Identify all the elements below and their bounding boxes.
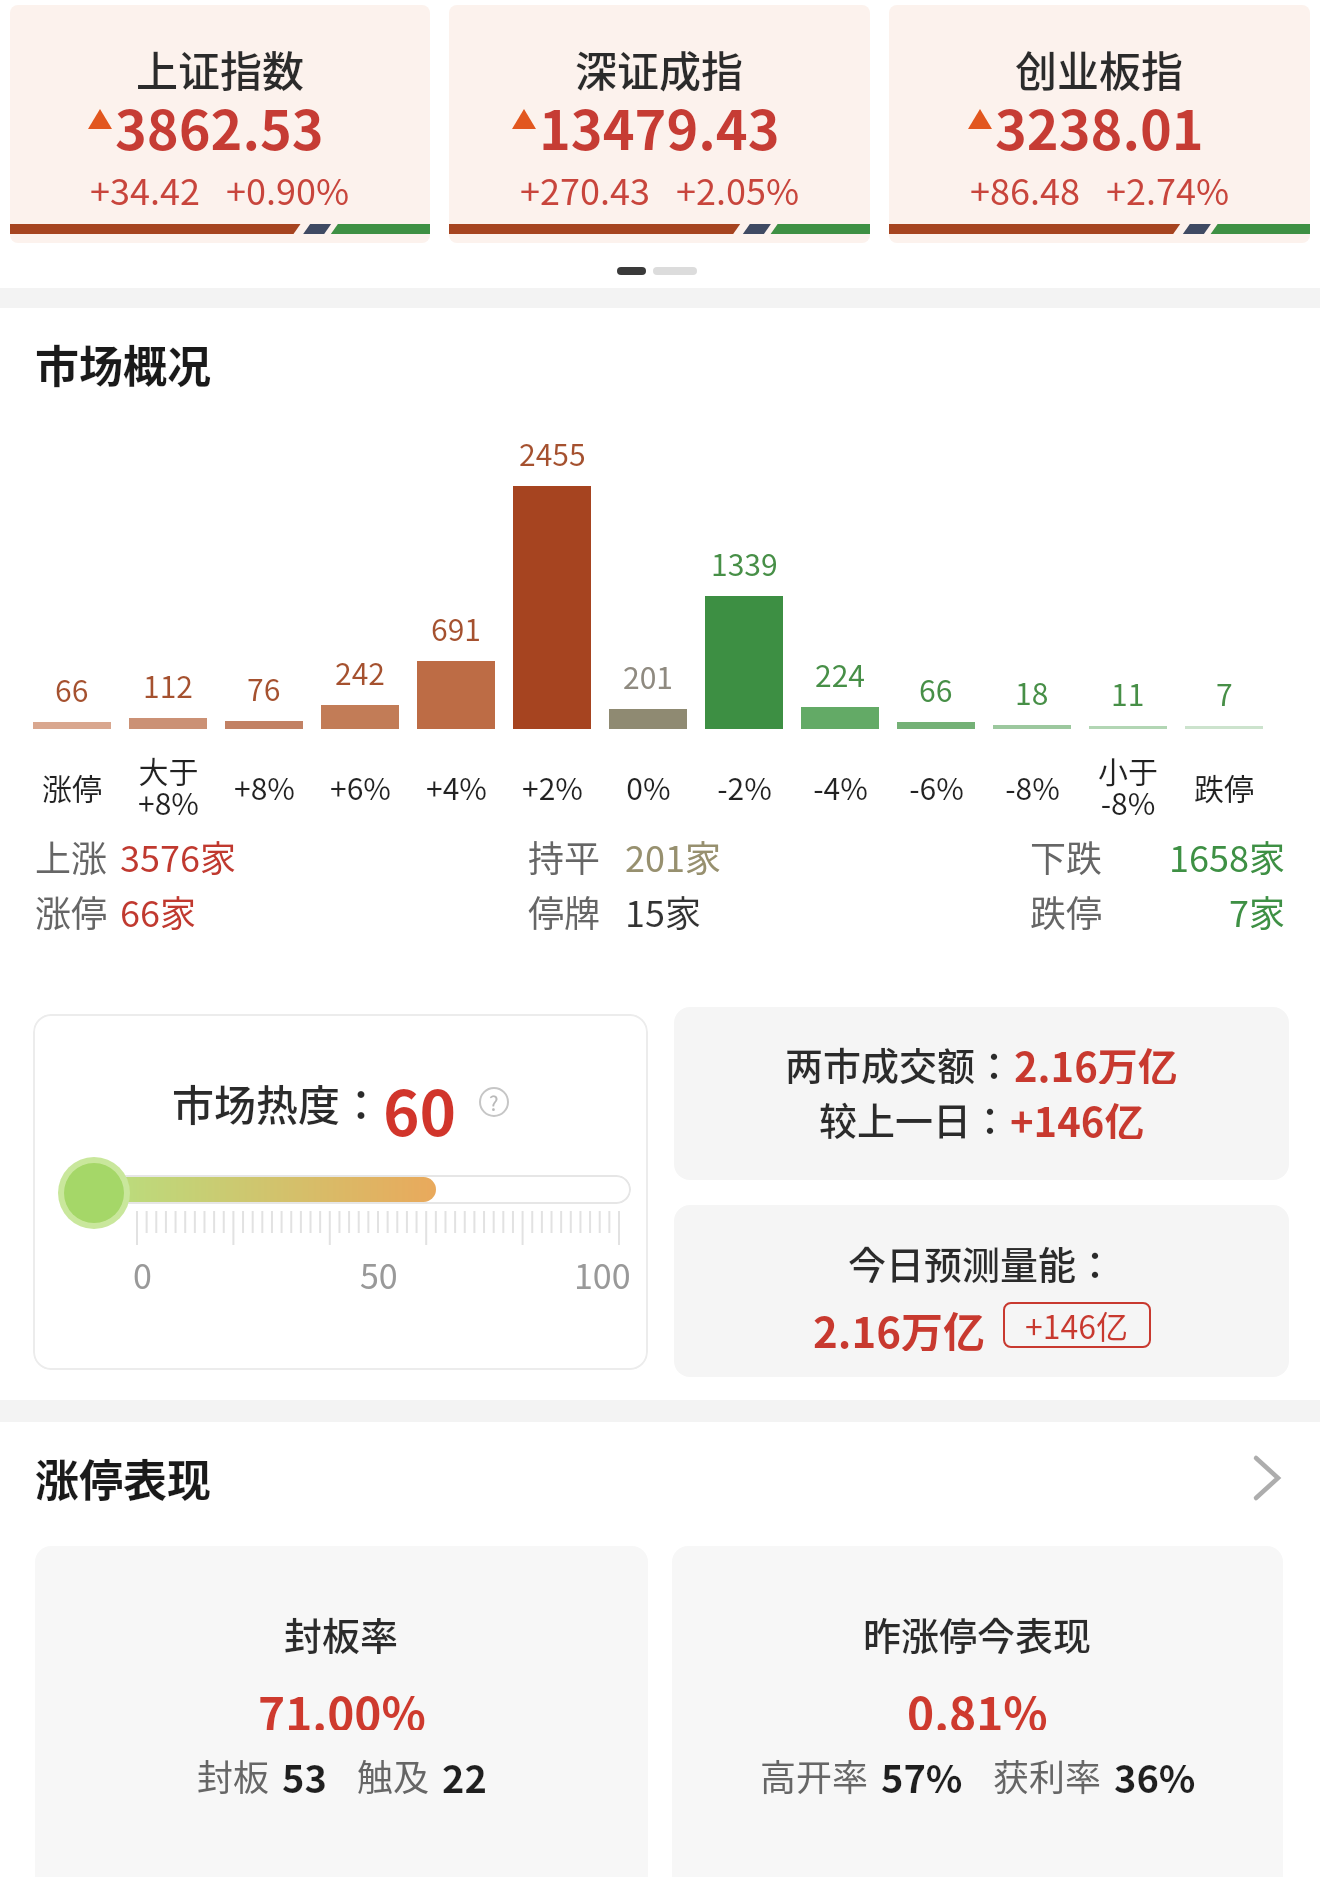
- staticText: 66家: [120, 885, 196, 937]
- staticText: ?: [489, 1088, 499, 1117]
- staticText: 1658家: [1169, 830, 1285, 882]
- staticText: 71.00%: [258, 1678, 426, 1730]
- button[interactable]: 深证成指: [449, 5, 870, 243]
- staticText: 上涨: [35, 830, 108, 882]
- staticText: 13479.43: [539, 87, 780, 151]
- staticText: -4%: [813, 765, 868, 808]
- staticText: +4%: [426, 765, 487, 808]
- button[interactable]: 两市成交额：: [674, 1007, 1289, 1180]
- staticText: 两市成交额：: [785, 1036, 1014, 1084]
- staticText: 小于 -8%: [1098, 748, 1158, 824]
- staticText: 触及: [357, 1749, 430, 1797]
- staticText: 较上一日：: [819, 1091, 1010, 1139]
- staticText: 涨停: [35, 885, 108, 937]
- staticText: 跌停: [1030, 885, 1103, 937]
- staticText: 今日预测量能：: [848, 1235, 1115, 1283]
- button[interactable]: 市场热度：: [33, 1014, 648, 1370]
- staticText: 涨停表现: [35, 1446, 211, 1510]
- staticText: 0%: [626, 765, 671, 808]
- staticText: 201: [623, 654, 673, 697]
- staticText: +34.42: [90, 163, 200, 215]
- staticText: 7: [1216, 671, 1233, 714]
- staticText: 停牌: [528, 885, 601, 937]
- staticText: 11: [1111, 671, 1145, 714]
- staticText: 封板率: [284, 1606, 399, 1654]
- staticText: 18: [1015, 670, 1049, 713]
- staticText: 60: [383, 1064, 457, 1140]
- staticText: +8%: [234, 765, 295, 808]
- button[interactable]: 创业板指: [889, 5, 1310, 243]
- staticText: 50: [360, 1250, 398, 1294]
- staticText: 1339: [711, 541, 778, 584]
- staticText: 封板: [197, 1749, 270, 1797]
- staticText: 201家: [625, 830, 721, 882]
- staticText: 76: [247, 666, 281, 709]
- staticText: 22: [442, 1749, 487, 1797]
- button[interactable]: 封板率: [35, 1546, 648, 1877]
- staticText: 36%: [1114, 1749, 1196, 1797]
- staticText: 3238.01: [995, 87, 1204, 151]
- staticText: -2%: [717, 765, 772, 808]
- staticText: 深证成指: [575, 38, 744, 94]
- staticText: 创业板指: [1015, 38, 1184, 94]
- staticText: 57%: [881, 1749, 963, 1797]
- staticText: +146亿: [1010, 1091, 1145, 1139]
- staticText: +2%: [522, 765, 583, 808]
- staticText: 高开率: [760, 1749, 869, 1797]
- staticText: 0: [133, 1250, 152, 1294]
- staticText: 100: [574, 1250, 631, 1294]
- staticText: 2455: [519, 431, 586, 474]
- button[interactable]: 昨涨停今表现: [672, 1546, 1283, 1877]
- staticText: 2.16万亿: [1014, 1036, 1178, 1084]
- staticText: +2.74%: [1106, 163, 1230, 215]
- staticText: 大于 +8%: [138, 748, 199, 824]
- staticText: 15家: [625, 885, 701, 937]
- staticText: 2.16万亿: [813, 1299, 985, 1351]
- staticText: +2.05%: [676, 163, 800, 215]
- button[interactable]: 上证指数: [10, 5, 430, 243]
- staticText: 跌停: [1194, 765, 1254, 808]
- button[interactable]: 涨停表现: [0, 1440, 1320, 1516]
- staticText: 3862.53: [115, 87, 324, 151]
- staticText: 昨涨停今表现: [863, 1606, 1092, 1654]
- staticText: 涨停: [42, 765, 102, 808]
- staticText: 下跌: [1030, 830, 1103, 882]
- staticText: 市场概况: [35, 332, 211, 392]
- staticText: -8%: [1005, 765, 1060, 808]
- staticText: 7家: [1229, 885, 1285, 937]
- staticText: 获利率: [993, 1749, 1102, 1797]
- staticText: 53: [282, 1749, 327, 1797]
- staticText: 上证指数: [136, 38, 305, 94]
- staticText: +86.48: [970, 163, 1080, 215]
- staticText: 3576家: [120, 830, 236, 882]
- staticText: +270.43: [520, 163, 650, 215]
- button[interactable]: 今日预测量能：: [674, 1205, 1289, 1377]
- staticText: 224: [815, 652, 865, 695]
- staticText: 112: [143, 663, 193, 706]
- staticText: 66: [919, 667, 953, 710]
- staticText: 66: [55, 667, 89, 710]
- staticText: 0.81%: [907, 1678, 1048, 1730]
- staticText: +146亿: [1025, 1302, 1129, 1348]
- staticText: +0.90%: [226, 163, 350, 215]
- staticText: 市场热度：: [172, 1072, 383, 1133]
- staticText: -6%: [909, 765, 964, 808]
- staticText: 691: [431, 606, 481, 649]
- staticText: 持平: [528, 830, 601, 882]
- staticText: 242: [335, 650, 385, 693]
- staticText: +6%: [330, 765, 391, 808]
